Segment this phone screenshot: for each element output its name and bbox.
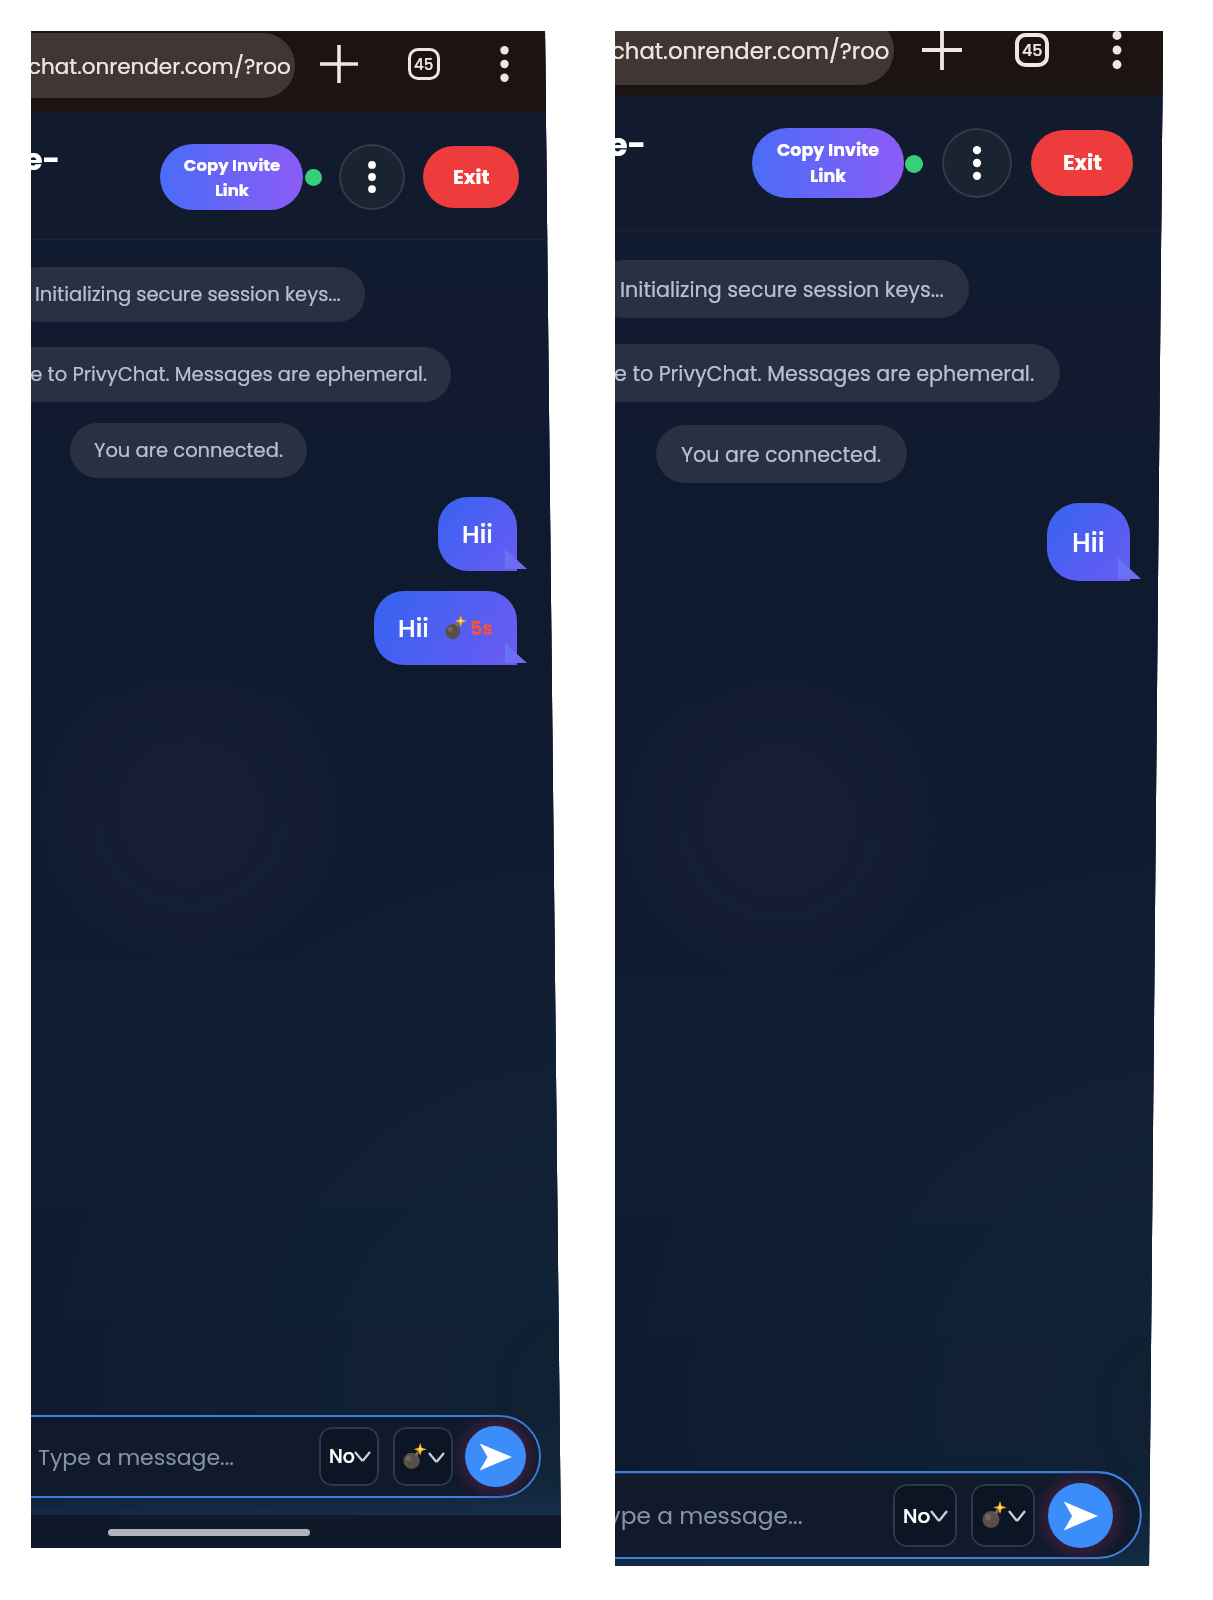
staticText: Welcome to PrivyChat. Messages are ephem…	[615, 359, 1035, 388]
button[interactable]: More options	[473, 33, 535, 95]
button[interactable]: Exit	[423, 146, 519, 208]
button[interactable]: New tab	[308, 33, 370, 95]
staticText: Hii	[462, 517, 493, 552]
staticText: Hii	[398, 611, 429, 646]
staticText: 45	[1022, 39, 1043, 61]
staticText: 45	[414, 54, 434, 75]
staticText: Initializing secure session keys...	[620, 275, 944, 304]
button[interactable]: Self destruct timer	[971, 1484, 1035, 1547]
staticText: Exit	[1063, 148, 1102, 178]
staticText: Exit	[453, 163, 490, 191]
staticText: e-	[615, 123, 647, 168]
button[interactable]: New tab	[909, 31, 975, 82]
button[interactable]: Copy Invite Link	[752, 128, 904, 198]
button[interactable]: Send	[1048, 1483, 1113, 1548]
staticText: e-	[31, 139, 60, 181]
staticText: Copy Invite Link	[773, 138, 883, 188]
button[interactable]: More options	[1084, 31, 1150, 82]
staticText: Hii	[1072, 524, 1105, 561]
staticText: No	[329, 1443, 355, 1470]
staticText: Type a message...	[615, 1500, 803, 1533]
staticText: 5s	[470, 615, 493, 642]
button[interactable]: Exit	[1031, 130, 1133, 196]
staticText: Type a message...	[38, 1442, 234, 1473]
button[interactable]: Send	[465, 1426, 526, 1487]
button[interactable]: chat.onrender.com/?roo	[31, 33, 295, 98]
staticText: Copy Invite Link	[180, 154, 284, 201]
button[interactable]: chat.onrender.com/?roo	[615, 31, 894, 85]
button[interactable]: Copy Invite Link	[160, 144, 303, 210]
staticText: chat.onrender.com/?roo	[31, 51, 291, 81]
staticText: You are connected.	[94, 437, 283, 464]
button[interactable]: Self destruct timer	[393, 1427, 453, 1486]
button[interactable]: Burn after reading	[319, 1427, 379, 1486]
staticText: chat.onrender.com/?roo	[615, 35, 890, 67]
button[interactable]: Tabs	[393, 33, 455, 95]
staticText: You are connected.	[681, 440, 882, 469]
button[interactable]: Chat options	[942, 128, 1012, 198]
staticText: Initializing secure session keys...	[35, 281, 341, 308]
staticText: No	[903, 1502, 931, 1530]
button[interactable]: Burn after reading	[893, 1484, 957, 1547]
staticText: Welcome to PrivyChat. Messages are ephem…	[31, 361, 427, 388]
button[interactable]: Chat options	[339, 144, 405, 210]
button[interactable]: Tabs	[999, 31, 1065, 82]
